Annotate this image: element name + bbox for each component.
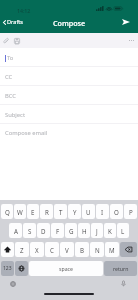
- staticText: S: [28, 227, 32, 235]
- staticText: Compose email: [5, 129, 48, 137]
- button[interactable]: U: [82, 204, 95, 219]
- button[interactable]: K: [104, 223, 116, 238]
- button[interactable]: BCC: [0, 86, 138, 105]
- button[interactable]: Dictation: [116, 276, 130, 290]
- button[interactable]: return: [104, 261, 137, 276]
- button[interactable]: To: [0, 48, 138, 67]
- staticText: H: [82, 227, 87, 235]
- button[interactable]: T: [54, 204, 67, 219]
- staticText: N: [95, 246, 100, 254]
- button[interactable]: N: [90, 242, 104, 257]
- staticText: M: [109, 246, 115, 254]
- button[interactable]: P: [124, 204, 137, 219]
- staticText: I: [101, 208, 104, 216]
- button[interactable]: G: [65, 223, 77, 238]
- button[interactable]: I: [96, 204, 109, 219]
- staticText: return: [113, 265, 129, 272]
- staticText: Compose: [53, 18, 86, 28]
- button[interactable]: Drafts: [0, 14, 28, 30]
- staticText: Z: [20, 246, 24, 254]
- button[interactable]: Backspace: [120, 242, 137, 257]
- staticText: Q: [5, 208, 10, 216]
- staticText: J: [96, 227, 98, 235]
- button[interactable]: More options: [124, 33, 138, 48]
- staticText: W: [17, 208, 23, 216]
- button[interactable]: R: [40, 204, 53, 219]
- button[interactable]: Emoji keyboard: [15, 261, 28, 276]
- staticText: F: [56, 227, 60, 235]
- button[interactable]: S: [23, 223, 36, 238]
- button[interactable]: Attach file: [0, 33, 11, 48]
- staticText: BCC: [5, 92, 16, 100]
- button[interactable]: F: [51, 223, 64, 238]
- button[interactable]: V: [60, 242, 74, 257]
- button[interactable]: Compose email: [0, 124, 138, 200]
- staticText: E: [31, 208, 35, 216]
- button[interactable]: Save draft: [11, 33, 22, 48]
- button[interactable]: A: [9, 223, 22, 238]
- staticText: B: [80, 246, 85, 254]
- button[interactable]: Shift: [1, 242, 14, 257]
- staticText: CC: [5, 73, 13, 81]
- staticText: Subject: [5, 111, 25, 119]
- button[interactable]: W: [14, 204, 26, 219]
- staticText: P: [129, 208, 133, 216]
- staticText: To: [7, 54, 14, 62]
- button[interactable]: Subject: [0, 105, 138, 124]
- button[interactable]: L: [117, 223, 129, 238]
- button[interactable]: C: [45, 242, 59, 257]
- button[interactable]: O: [110, 204, 123, 219]
- button[interactable]: space: [29, 261, 103, 276]
- staticText: X: [35, 246, 39, 254]
- staticText: C: [50, 246, 54, 254]
- button[interactable]: Change keyboard: [6, 277, 20, 291]
- staticText: Drafts: [7, 18, 24, 26]
- button[interactable]: H: [78, 223, 90, 238]
- staticText: V: [65, 246, 69, 254]
- button[interactable]: E: [27, 204, 39, 219]
- button[interactable]: CC: [0, 67, 138, 86]
- staticText: R: [45, 208, 49, 216]
- staticText: A: [14, 227, 18, 235]
- staticText: T: [59, 208, 63, 216]
- button[interactable]: B: [75, 242, 89, 257]
- button[interactable]: 123: [1, 261, 14, 276]
- button[interactable]: Q: [1, 204, 13, 219]
- staticText: L: [121, 227, 125, 235]
- staticText: D: [41, 227, 46, 235]
- staticText: K: [108, 227, 112, 235]
- button[interactable]: X: [30, 242, 44, 257]
- button[interactable]: D: [37, 223, 50, 238]
- staticText: space: [59, 265, 74, 272]
- staticText: G: [69, 227, 74, 235]
- button[interactable]: M: [105, 242, 119, 257]
- staticText: Y: [73, 208, 77, 216]
- staticText: O: [114, 208, 119, 216]
- button[interactable]: Y: [68, 204, 81, 219]
- button[interactable]: Send: [116, 14, 138, 30]
- button[interactable]: Z: [15, 242, 29, 257]
- staticText: U: [86, 208, 91, 216]
- staticText: 14:12: [17, 7, 31, 14]
- staticText: 123: [3, 265, 12, 272]
- button[interactable]: J: [91, 223, 103, 238]
